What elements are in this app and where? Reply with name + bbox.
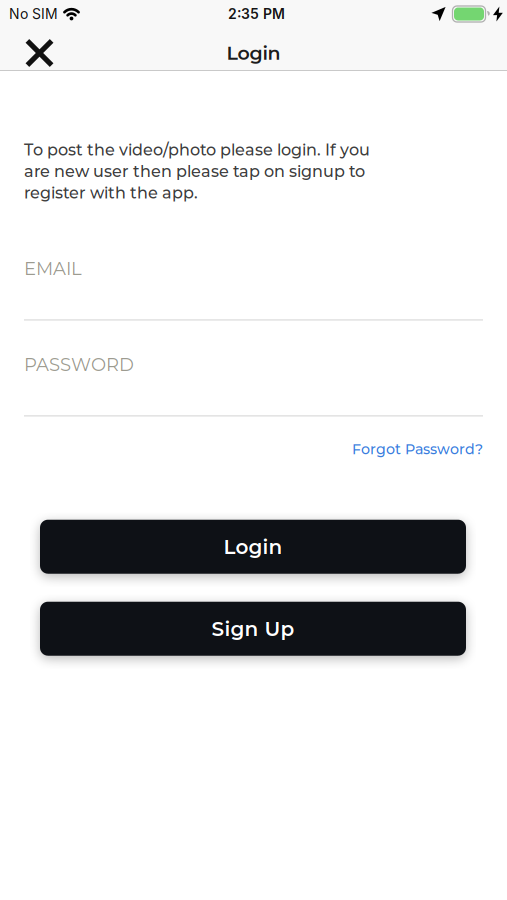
staticText: Forgot Password? <box>352 440 483 458</box>
textField[interactable]: EMAIL <box>24 257 483 279</box>
staticText: 2:35 PM <box>228 5 285 22</box>
button[interactable]: Sign Up <box>40 602 466 656</box>
staticText: Login <box>223 534 282 559</box>
staticText: PASSWORD <box>24 353 134 375</box>
textField[interactable]: PASSWORD <box>24 353 483 375</box>
button[interactable] <box>0 38 54 67</box>
staticText: Login <box>226 41 280 65</box>
button[interactable]: Login <box>40 520 466 574</box>
button[interactable]: Forgot Password? <box>352 440 483 458</box>
staticText: EMAIL <box>24 257 82 279</box>
staticText: No SIM <box>9 5 58 22</box>
staticText: To post the video/photo please login. If… <box>24 140 370 202</box>
staticText: Sign Up <box>211 616 294 641</box>
